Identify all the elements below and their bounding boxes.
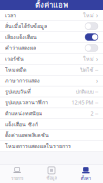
staticText: ··· [95, 66, 98, 73]
staticText: ตั้งค่าแอพพลิเคชัน [5, 131, 49, 139]
staticText: ข้อมูล [46, 175, 56, 181]
button[interactable]: ตั้งค่าแอพพลิเคชัน [0, 130, 103, 141]
staticText: › [96, 11, 98, 20]
staticText: สั่นเมื่อได้รับข้อมูล [5, 22, 47, 30]
button[interactable]: ภาษาการแสดง [0, 75, 103, 86]
staticText: ตำแหน่งทศนิยม [5, 109, 43, 117]
button[interactable]: ข้อมูล [34, 165, 69, 183]
button[interactable]: รายการ [0, 165, 34, 183]
staticText: ··· [95, 88, 98, 95]
staticText: โหมดมืด [5, 66, 26, 74]
staticText: › [96, 76, 98, 85]
button[interactable]: เวอร์ชัน [0, 54, 103, 64]
button[interactable]: โหมดการแสดงผลในรายการ [0, 141, 103, 152]
button[interactable]: แจ้งเตือน ซิงก์ [0, 119, 103, 130]
button[interactable]: สั่นเมื่อได้รับข้อมูล [0, 21, 103, 32]
staticText: โหมดการแสดงผลในรายการ [5, 142, 71, 150]
staticText: เสียงแจ้งเตือน [5, 33, 37, 41]
button[interactable]: เสียงแจ้งเตือน [0, 32, 103, 43]
staticText: เวลา [5, 11, 16, 19]
staticText: ตั้งค่า [81, 175, 91, 182]
button[interactable]: เวลา [0, 10, 103, 21]
button[interactable]: ตำแหน่งทศนิยม [0, 108, 103, 119]
staticText: ··· [95, 99, 98, 106]
button[interactable]: คำว่าแสดงผล [0, 43, 103, 54]
staticText: 2 [90, 110, 93, 117]
staticText: รูปแบบวันที่ [5, 87, 31, 96]
button[interactable]: ตั้งค่า [69, 165, 103, 183]
staticText: ··· [95, 110, 98, 117]
staticText: 12:45 PM [71, 99, 93, 106]
button[interactable]: รูปแบบเวลานาฬิกา [0, 97, 103, 108]
staticText: รายการ [11, 175, 23, 182]
staticText: ปิดใช้ [80, 66, 93, 74]
button[interactable]: โหมดมืด [0, 64, 103, 75]
staticText: ปกติแบบ [75, 87, 93, 96]
staticText: › [96, 54, 98, 63]
staticText: ตั้งค่าแอพ [35, 0, 68, 11]
staticText: แจ้งเตือน ซิงก์ [5, 120, 38, 128]
staticText: รูปแบบเวลานาฬิกา [5, 98, 48, 107]
button[interactable]: รูปแบบวันที่ [0, 86, 103, 97]
staticText: ภาษาการแสดง [5, 76, 40, 85]
staticText: เวอร์ชัน [5, 55, 24, 63]
staticText: ใหม่ [83, 11, 94, 19]
staticText: ใหม่ [83, 55, 94, 63]
staticText: คำว่าแสดงผล [5, 44, 36, 52]
